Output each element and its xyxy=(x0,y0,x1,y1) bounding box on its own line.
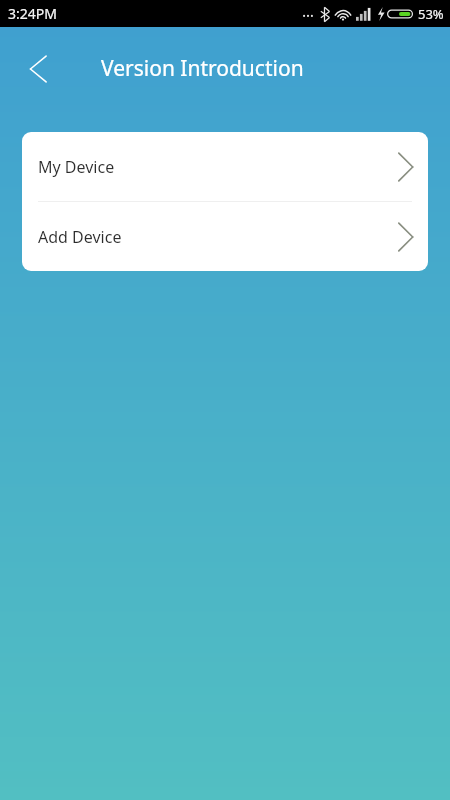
button[interactable]: Add Device xyxy=(22,202,428,271)
staticText: 3:24PM xyxy=(8,4,57,23)
button[interactable]: Back xyxy=(14,45,62,93)
staticText: Version Introduction xyxy=(101,54,304,83)
staticText: My Device xyxy=(38,156,115,178)
button[interactable]: My Device xyxy=(22,132,428,201)
staticText: Add Device xyxy=(38,226,122,248)
staticText: 53% xyxy=(418,5,444,23)
